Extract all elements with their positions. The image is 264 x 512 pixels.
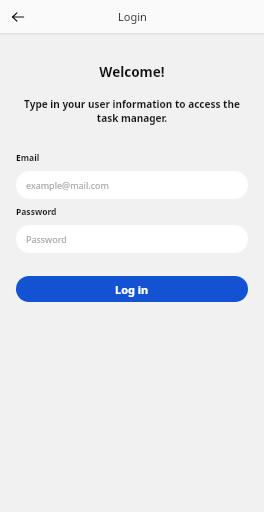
- staticText: Type in your user information to access …: [22, 97, 242, 125]
- staticText: Login: [118, 9, 147, 24]
- button[interactable]: Back: [4, 3, 32, 31]
- button[interactable]: example@mail.com: [16, 171, 248, 199]
- staticText: Password: [26, 233, 67, 245]
- staticText: Email: [16, 152, 40, 164]
- staticText: Password: [16, 206, 57, 218]
- button[interactable]: Password: [16, 225, 248, 253]
- button[interactable]: Log in: [16, 276, 248, 302]
- staticText: example@mail.com: [26, 179, 109, 191]
- staticText: Log in: [115, 282, 149, 297]
- staticText: Welcome!: [0, 63, 264, 81]
